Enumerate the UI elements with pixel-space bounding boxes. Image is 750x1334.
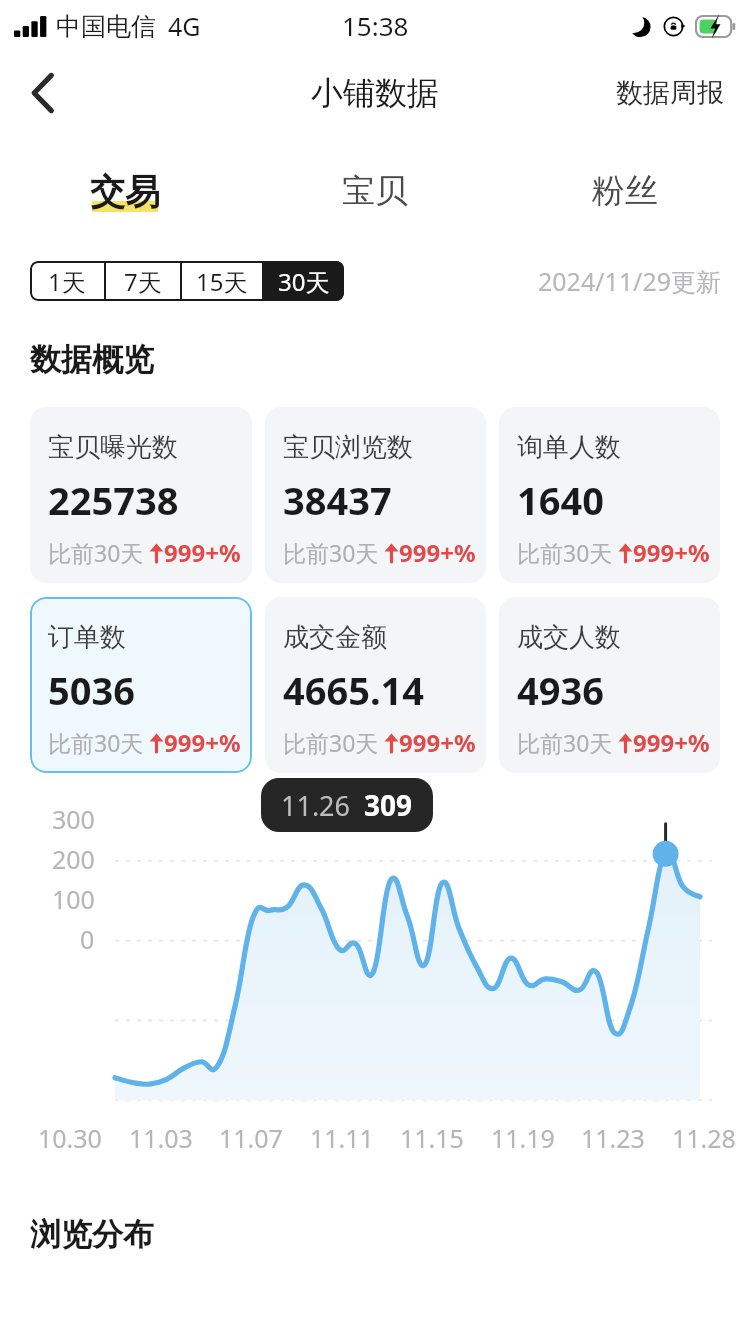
staticText: 4G <box>168 9 201 43</box>
staticText: 15:38 <box>342 8 409 43</box>
button[interactable]: 返回 <box>14 64 72 122</box>
staticText: 成交人数 <box>517 621 621 654</box>
staticText: 200 <box>52 842 95 876</box>
staticText: 粉丝 <box>592 170 658 212</box>
staticText: 订单数 <box>48 621 126 654</box>
staticText: 11.23 <box>581 1121 645 1155</box>
staticText: 11.19 <box>491 1121 555 1155</box>
staticText: 比前30天 <box>48 537 144 568</box>
staticText: 999+% <box>633 726 710 759</box>
staticText: 宝贝浏览数 <box>283 431 413 464</box>
button[interactable]: 交易 <box>0 164 250 220</box>
staticText: 成交金额 <box>283 621 387 654</box>
staticText: 中国电信 <box>56 11 156 42</box>
staticText: 4665.14 <box>283 664 425 716</box>
staticText: 11.28 <box>672 1121 736 1155</box>
staticText: 5036 <box>48 664 135 716</box>
staticText: 11.15 <box>400 1121 464 1155</box>
button[interactable]: 数据周报 <box>590 62 750 124</box>
staticText: 宝贝曝光数 <box>48 431 178 464</box>
staticText: 225738 <box>48 474 179 526</box>
staticText: 999+% <box>164 536 241 569</box>
staticText: 11.11 <box>310 1121 374 1155</box>
button[interactable]: 1天 <box>30 261 104 301</box>
button[interactable]: 15天 <box>182 261 262 301</box>
staticText: 999+% <box>399 726 476 759</box>
staticText: 999+% <box>633 536 710 569</box>
staticText: 小铺数据 <box>311 73 439 113</box>
button[interactable]: 成交金额 <box>265 597 486 773</box>
staticText: 比前30天 <box>283 537 379 568</box>
staticText: 999+% <box>399 536 476 569</box>
staticText: 10.30 <box>38 1121 102 1155</box>
button[interactable]: 订单数 <box>30 597 252 773</box>
button[interactable]: 询单人数 <box>499 407 720 583</box>
staticText: 100 <box>52 882 95 916</box>
staticText: 比前30天 <box>283 727 379 758</box>
staticText: 宝贝 <box>342 170 408 212</box>
staticText: 309 <box>364 786 413 824</box>
button[interactable]: 宝贝浏览数 <box>265 407 486 583</box>
staticText: 15天 <box>196 265 248 298</box>
staticText: 交易 <box>90 170 160 214</box>
staticText: 2024/11/29更新 <box>538 264 722 298</box>
staticText: 999+% <box>164 726 241 759</box>
button[interactable]: 30天 <box>264 261 344 301</box>
staticText: 11.03 <box>129 1121 193 1155</box>
button[interactable]: 7天 <box>106 261 180 301</box>
button[interactable]: 宝贝 <box>250 164 500 218</box>
staticText: 4936 <box>517 664 604 716</box>
button[interactable]: 粉丝 <box>500 164 750 218</box>
staticText: 比前30天 <box>48 727 144 758</box>
staticText: 7天 <box>124 265 162 298</box>
staticText: 1640 <box>517 474 604 526</box>
staticText: 38437 <box>283 474 392 526</box>
staticText: 比前30天 <box>517 727 613 758</box>
button[interactable]: 宝贝曝光数 <box>30 407 252 583</box>
staticText: 0 <box>80 922 95 956</box>
staticText: 30天 <box>278 265 330 298</box>
staticText: 300 <box>52 802 95 836</box>
staticText: 1天 <box>48 265 86 298</box>
staticText: 数据概览 <box>30 340 154 379</box>
staticText: 11.26 <box>281 787 351 824</box>
button[interactable]: 成交人数 <box>499 597 720 773</box>
staticText: 询单人数 <box>517 431 621 464</box>
staticText: 11.07 <box>219 1121 283 1155</box>
staticText: 比前30天 <box>517 537 613 568</box>
staticText: 浏览分布 <box>30 1215 154 1254</box>
staticText: 数据周报 <box>616 76 724 110</box>
